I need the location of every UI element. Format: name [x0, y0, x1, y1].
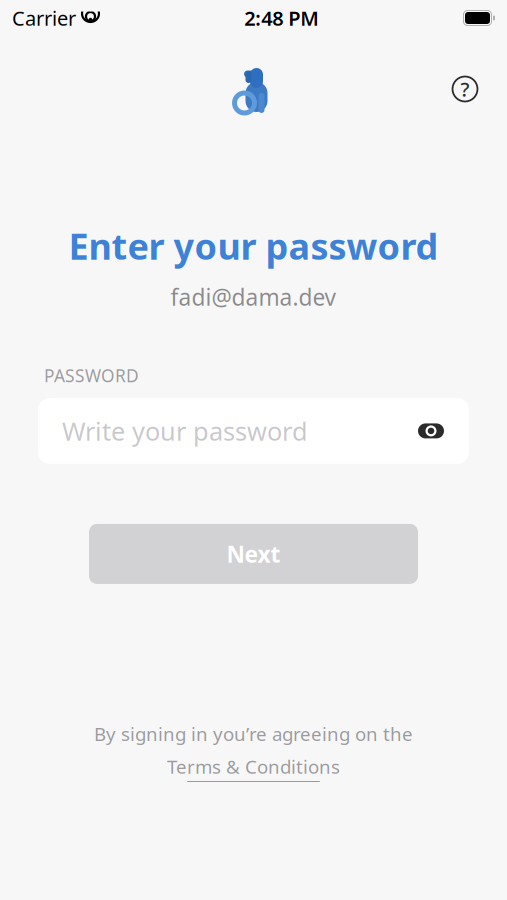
staticText: PASSWORD	[44, 364, 139, 387]
button[interactable]: Help	[445, 69, 485, 109]
staticText: Enter your password	[68, 222, 438, 270]
staticText: Terms & Conditions	[167, 754, 340, 779]
button[interactable]: Terms & Conditions	[167, 754, 340, 782]
staticText: 2:48 PM	[244, 5, 319, 31]
staticText: Next	[226, 539, 280, 569]
staticText: By signing in you’re agreeing on the	[94, 721, 413, 746]
staticText: Carrier	[12, 5, 76, 31]
staticText: Write your password	[62, 414, 308, 448]
staticText: ?	[460, 76, 469, 102]
button[interactable]: Next	[89, 524, 418, 584]
staticText: fadi@dama.dev	[170, 282, 336, 312]
button[interactable]: Write your password	[38, 398, 469, 464]
